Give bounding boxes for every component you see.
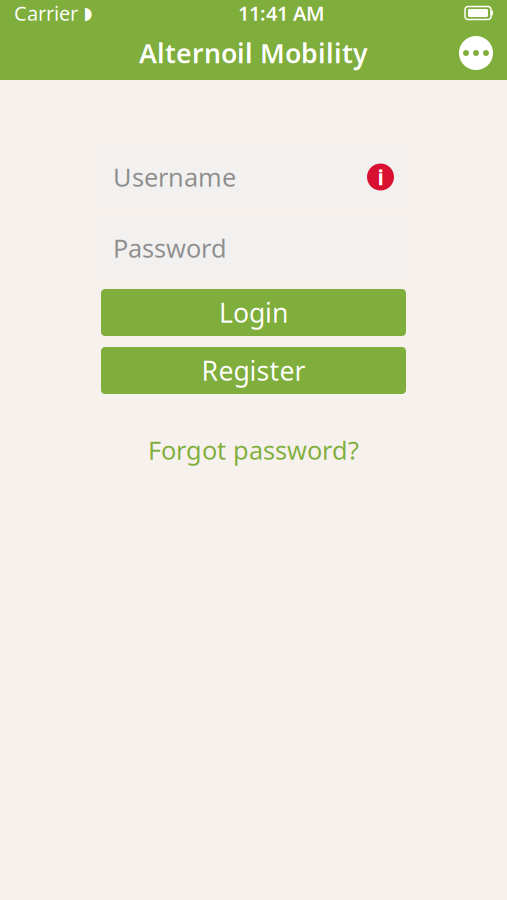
staticText: Login	[219, 295, 288, 330]
button[interactable]: More options	[454, 31, 498, 75]
staticText: Carrier	[14, 0, 78, 26]
staticText: 11:41 AM	[238, 0, 325, 26]
button[interactable]: Username	[101, 148, 406, 206]
staticText: ◗	[83, 3, 92, 23]
staticText: Username	[113, 160, 236, 194]
staticText: Register	[201, 353, 305, 388]
staticText: Alternoil Mobility	[139, 35, 368, 71]
button[interactable]: Login	[101, 289, 406, 336]
staticText: Forgot password?	[148, 433, 359, 467]
staticText: i	[377, 163, 383, 191]
button[interactable]: Forgot password?	[101, 423, 406, 477]
staticText: Password	[113, 231, 227, 265]
button[interactable]: Register	[101, 347, 406, 394]
button[interactable]: Password	[101, 219, 406, 277]
